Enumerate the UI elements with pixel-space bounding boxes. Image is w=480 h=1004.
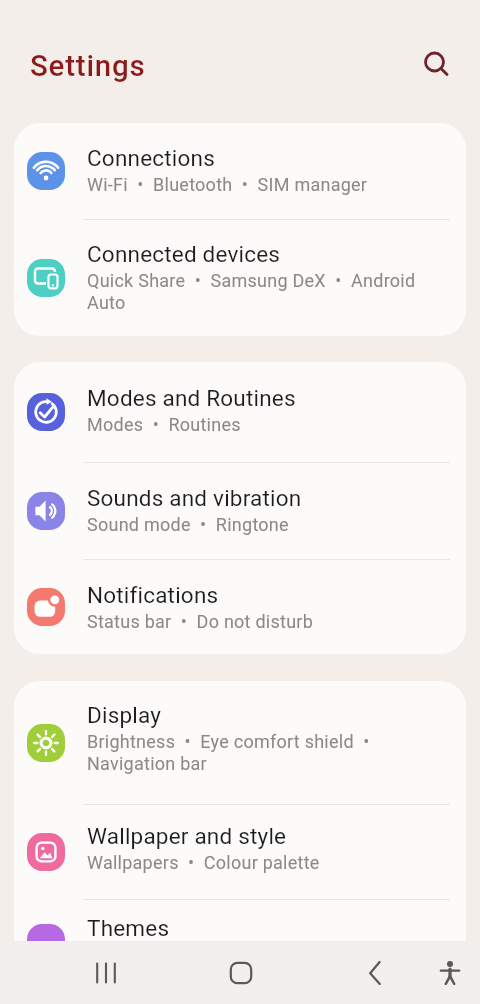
button[interactable] — [84, 951, 128, 995]
button[interactable]: Themes — [14, 900, 466, 986]
button[interactable] — [428, 951, 472, 995]
staticText: Wallpaper and style — [87, 823, 287, 849]
staticText: Status bar • Do not disturb — [87, 611, 314, 632]
button[interactable] — [353, 951, 397, 995]
staticText: Wi-Fi • Bluetooth • SIM manager — [87, 174, 368, 195]
button[interactable]: Connected devices — [14, 220, 466, 336]
staticText: Connections — [87, 145, 215, 171]
button[interactable]: Sounds and vibration — [14, 463, 466, 559]
button[interactable]: Notifications — [14, 560, 466, 654]
staticText: Settings — [30, 49, 146, 84]
staticText: Connected devices — [87, 241, 281, 267]
staticText: Modes • Routines — [87, 414, 241, 435]
staticText: Sound mode • Ringtone — [87, 514, 289, 535]
button[interactable] — [219, 951, 263, 995]
button[interactable]: Display — [14, 681, 466, 804]
staticText: Modes and Routines — [87, 385, 296, 411]
staticText: Sounds and vibration — [87, 485, 302, 511]
staticText: Icons — [87, 944, 133, 965]
button[interactable] — [413, 40, 457, 84]
staticText: Brightness • Eye comfort shield • Naviga… — [87, 731, 442, 775]
staticText: Themes — [87, 915, 170, 941]
button[interactable]: Connections — [14, 123, 466, 219]
staticText: Notifications — [87, 582, 219, 608]
button[interactable]: Wallpaper and style — [14, 805, 466, 899]
button[interactable]: Modes and Routines — [14, 362, 466, 462]
staticText: Quick Share • Samsung DeX • Android Auto — [87, 270, 442, 314]
staticText: Display — [87, 702, 162, 728]
staticText: Wallpapers • Colour palette — [87, 852, 320, 873]
